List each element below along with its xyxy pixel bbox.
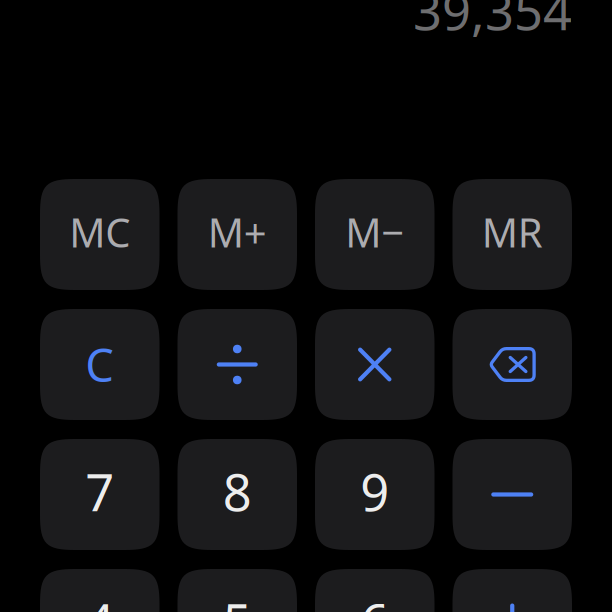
staticText: 8 — [223, 458, 252, 525]
button[interactable]: 4 — [40, 569, 159, 612]
staticText: 7 — [85, 458, 114, 525]
staticText: MC — [69, 205, 130, 258]
button[interactable]: Divide — [177, 309, 297, 420]
staticText: 5 — [223, 588, 252, 612]
button[interactable]: Minus — [452, 439, 572, 550]
staticText: M− — [345, 205, 404, 258]
staticText: 39,354 — [413, 0, 572, 44]
staticText: 9 — [360, 458, 389, 525]
button[interactable]: 7 — [40, 439, 159, 550]
button[interactable]: 5 — [177, 569, 297, 612]
button[interactable]: 8 — [177, 439, 297, 550]
staticText: C — [85, 334, 114, 395]
button[interactable]: 9 — [315, 439, 434, 550]
button[interactable]: M+ — [177, 179, 297, 290]
button[interactable]: MR — [452, 179, 572, 290]
staticText: M+ — [208, 205, 267, 258]
button[interactable]: MC — [40, 179, 159, 290]
button[interactable]: M− — [315, 179, 434, 290]
staticText: 4 — [85, 588, 114, 612]
button[interactable]: Delete — [452, 309, 572, 420]
button[interactable]: 6 — [315, 569, 434, 612]
staticText: MR — [482, 205, 543, 258]
button[interactable]: Multiply — [315, 309, 434, 420]
button[interactable]: Plus — [452, 569, 572, 612]
button[interactable]: C — [40, 309, 159, 420]
staticText: 6 — [360, 588, 389, 612]
